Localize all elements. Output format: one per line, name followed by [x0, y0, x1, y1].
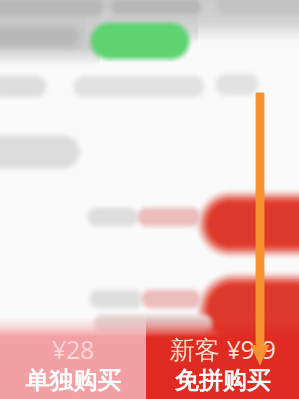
staticText: ¥28: [52, 332, 94, 366]
staticText: 新客 ¥9.9: [169, 332, 275, 366]
staticText: 单独购买: [25, 366, 121, 396]
button[interactable]: ¥28: [0, 338, 146, 390]
button[interactable]: 新客 ¥9.9: [146, 338, 299, 390]
staticText: 免拼购买: [174, 366, 270, 396]
